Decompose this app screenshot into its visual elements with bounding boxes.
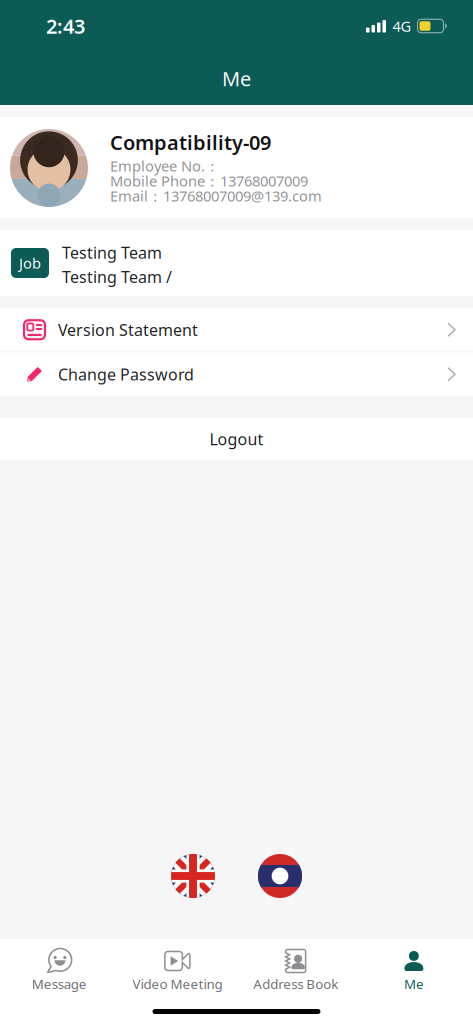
button[interactable]: Video Meeting <box>118 939 236 993</box>
staticText: Employee No.： <box>110 156 220 176</box>
staticText: Email：13768007009@139.com <box>110 186 322 206</box>
staticText: Me <box>222 65 251 92</box>
staticText: Testing Team <box>62 242 162 263</box>
staticText: Address Book <box>253 975 338 993</box>
button[interactable]: Message <box>0 939 118 993</box>
staticText: Logout <box>209 428 263 450</box>
button[interactable]: Logout <box>0 418 473 460</box>
staticText: Me <box>404 975 424 993</box>
button[interactable]: Address Book <box>236 939 355 993</box>
staticText: Job <box>19 253 41 273</box>
staticText: Message <box>32 975 87 993</box>
button[interactable]: Lao <box>258 854 302 898</box>
staticText: Video Meeting <box>132 975 222 993</box>
staticText: Mobile Phone：13768007009 <box>110 171 308 191</box>
staticText: 4G <box>392 16 411 36</box>
button[interactable]: Me <box>355 939 473 993</box>
button[interactable]: Version Statement <box>0 308 473 351</box>
staticText: Change Password <box>58 364 194 385</box>
staticText: Version Statement <box>58 319 198 340</box>
staticText: Compatibility-09 <box>110 129 271 156</box>
button[interactable]: English <box>171 854 215 898</box>
staticText: 2:43 <box>46 13 85 39</box>
staticText: Testing Team / <box>62 266 172 287</box>
button[interactable]: Change Password <box>0 352 473 396</box>
